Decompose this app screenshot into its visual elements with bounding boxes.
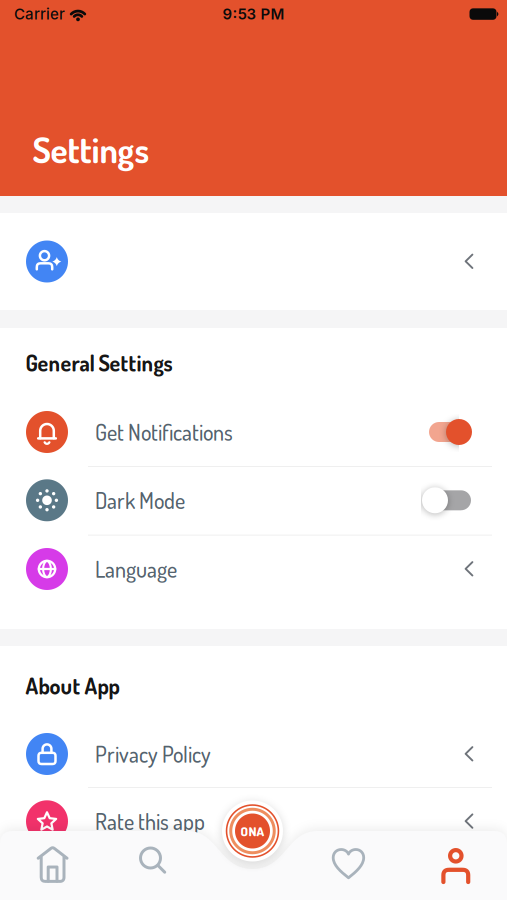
button[interactable]: Dark Mode	[0, 466, 507, 534]
button[interactable]: Account	[0, 213, 507, 310]
staticText: Get Notifications	[95, 418, 233, 446]
staticText: Settings	[32, 127, 149, 172]
button[interactable]: ONA home	[220, 799, 284, 863]
staticText: Rate this app	[95, 807, 205, 835]
staticText: Privacy Policy	[95, 740, 211, 768]
staticText: About App	[25, 672, 119, 700]
button[interactable]: Language	[0, 535, 507, 603]
button[interactable]: Get Notifications	[0, 398, 507, 466]
button[interactable]: Profile	[418, 831, 494, 893]
staticText: Dark Mode	[95, 486, 185, 514]
button[interactable]: Home	[15, 831, 91, 893]
staticText: General Settings	[25, 349, 172, 377]
staticText: 9:53 PM	[222, 5, 284, 23]
staticText: Language	[95, 555, 177, 583]
button[interactable]: Favorites	[310, 831, 386, 893]
button[interactable]: Privacy Policy	[0, 720, 507, 788]
staticText: ONA	[240, 823, 264, 839]
staticText: Carrier	[14, 5, 65, 23]
button[interactable]: Rate this app	[0, 787, 507, 855]
button[interactable]: Search	[114, 831, 190, 893]
